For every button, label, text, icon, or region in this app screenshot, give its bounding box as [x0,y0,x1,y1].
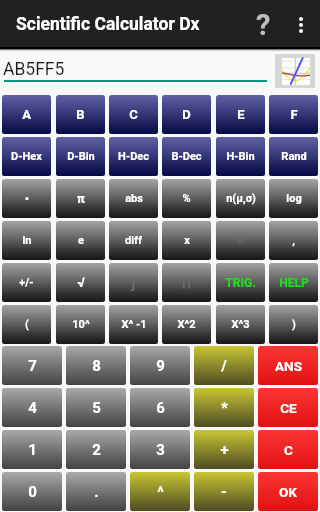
staticText: = [237,234,244,247]
staticText: * [221,399,228,417]
button[interactable]: 3 [130,430,190,469]
button[interactable]: H-Dec [109,137,158,176]
button[interactable]: Graph [275,54,315,88]
staticText: 0 [28,483,37,501]
staticText: 10^ [72,318,90,331]
button[interactable]: e [56,221,105,260]
staticText: · [24,188,30,209]
button[interactable]: HELP [269,263,318,302]
button[interactable]: B-Dec [162,137,211,176]
staticText: π [77,192,85,206]
button[interactable]: 2 [66,430,126,469]
button[interactable]: - [194,472,254,511]
staticText: % [182,192,191,205]
button[interactable]: Rand [269,137,318,176]
staticText: C [129,107,138,122]
button[interactable]: % [162,179,211,218]
staticText: CE [280,400,297,416]
button[interactable]: 1 [2,430,62,469]
button[interactable]: √ [56,263,105,302]
button[interactable]: Help [245,7,281,43]
staticText: n(μ,σ) [226,192,256,205]
button[interactable]: ( [2,305,51,344]
staticText: F [290,107,298,122]
button[interactable]: ln [2,221,51,260]
staticText: X^2 [177,318,196,331]
staticText: Scientific Calculator Dx [16,14,200,35]
button[interactable]: C [258,430,318,469]
button[interactable]: ) [269,305,318,344]
staticText: X^3 [231,318,250,331]
button[interactable]: TRIG. [216,263,265,302]
button[interactable]: ∫ [109,263,158,302]
button[interactable]: ^ [130,472,190,511]
staticText: +/- [19,276,34,289]
staticText: B-Dec [171,150,202,163]
staticText: ^ [157,483,164,501]
staticText: D-Bin [67,150,95,163]
staticText: / [221,357,227,375]
button[interactable]: . [66,472,126,511]
button[interactable]: 4 [2,388,62,427]
staticText: X^ -1 [121,318,147,331]
staticText: A [22,107,31,122]
button[interactable]: D [162,95,211,134]
button[interactable]: 9 [130,346,190,385]
button[interactable]: n(μ,σ) [216,179,265,218]
button[interactable]: D-Bin [56,137,105,176]
button[interactable]: D-Hex [2,137,51,176]
button[interactable]: · [2,179,51,218]
staticText: ? [256,8,271,42]
staticText: , [292,234,295,247]
staticText: log [286,192,302,205]
staticText: H-Bin [226,150,255,163]
staticText: C [284,442,293,458]
button[interactable]: 0 [2,472,62,511]
button[interactable]: X^3 [216,305,265,344]
staticText: ( [25,318,29,331]
button[interactable]: OK [258,472,318,511]
staticText: 9 [156,357,165,375]
button[interactable]: 7 [2,346,62,385]
button[interactable]: / [194,346,254,385]
button[interactable]: + [194,430,254,469]
button[interactable]: 5 [66,388,126,427]
button[interactable]: 6 [130,388,190,427]
button[interactable]: π [56,179,105,218]
button[interactable]: 10^ [56,305,105,344]
staticText: B [76,107,85,122]
button[interactable]: ANS [258,346,318,385]
staticText: 7 [28,357,37,375]
button[interactable]: * [194,388,254,427]
button[interactable]: abs [109,179,158,218]
staticText: [ ] [182,277,191,289]
button[interactable]: C [109,95,158,134]
staticText: ln [22,234,32,247]
button[interactable]: log [269,179,318,218]
staticText: Rand [281,150,307,163]
staticText: 6 [156,399,165,417]
staticText: e [78,234,84,247]
button[interactable]: More options [287,7,315,43]
button[interactable]: CE [258,388,318,427]
button[interactable]: +/- [2,263,51,302]
button[interactable]: B [56,95,105,134]
staticText: E [237,107,245,122]
button[interactable]: [ ] [162,263,211,302]
button[interactable]: x [162,221,211,260]
button[interactable]: diff [109,221,158,260]
button[interactable]: 8 [66,346,126,385]
button[interactable]: H-Bin [216,137,265,176]
staticText: diff [125,234,142,247]
staticText: AB5FF5 [3,59,65,80]
staticText: ∫ [131,274,136,292]
staticText: 3 [156,441,165,459]
button[interactable]: = [216,221,265,260]
staticText: D [182,107,191,122]
button[interactable]: E [216,95,265,134]
button[interactable]: , [269,221,318,260]
button[interactable]: X^ -1 [109,305,158,344]
button[interactable]: A [2,95,51,134]
button[interactable]: X^2 [162,305,211,344]
button[interactable]: F [269,95,318,134]
